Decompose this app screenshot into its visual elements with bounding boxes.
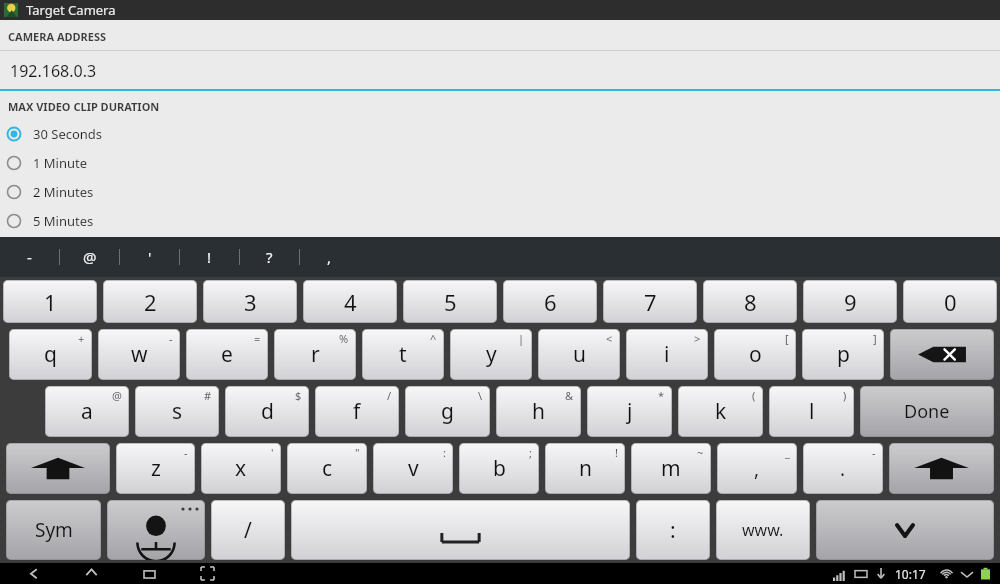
button[interactable]: Target Camera [0, 0, 1000, 20]
button[interactable]: 0 [903, 280, 997, 323]
button[interactable]: 7 [603, 280, 697, 323]
staticText: ) [843, 388, 847, 403]
staticText: a [81, 397, 93, 426]
button[interactable]: h [496, 386, 581, 437]
button[interactable]: d [225, 386, 309, 437]
button[interactable]: j [587, 386, 672, 437]
button[interactable]: k [678, 386, 763, 437]
staticText: < [606, 331, 613, 346]
staticText: ! [207, 247, 212, 267]
button[interactable]: z [116, 443, 195, 494]
staticText: 192.168.0.3 [10, 60, 97, 82]
button[interactable]: Recent apps [138, 563, 160, 584]
button[interactable]: Space [291, 500, 630, 560]
button[interactable]: p [802, 329, 884, 380]
button[interactable]: 1 Minute [0, 148, 1000, 177]
button[interactable]: Done [860, 386, 994, 437]
staticText: " [355, 445, 360, 460]
button[interactable]: i [626, 329, 708, 380]
staticText: 3 [244, 287, 257, 317]
button[interactable]: 30 Seconds [0, 119, 1000, 148]
button[interactable]: Sym [6, 500, 101, 560]
button[interactable]: 1 [3, 280, 97, 323]
button[interactable]: u [538, 329, 620, 380]
button[interactable]: Hide keyboard [816, 500, 994, 560]
button[interactable]: y [450, 329, 532, 380]
button[interactable]: m [631, 443, 711, 494]
button[interactable]: : [636, 500, 710, 560]
staticText: Target Camera [26, 1, 116, 19]
button[interactable]: . [803, 443, 883, 494]
button[interactable]: 8 [703, 280, 797, 323]
staticText: 6 [544, 287, 557, 317]
button[interactable]: 2 Minutes [0, 177, 1000, 206]
button[interactable]: Back [22, 563, 44, 584]
staticText: ' [148, 247, 152, 267]
button[interactable]: Shift [889, 443, 994, 494]
staticText: 7 [644, 287, 657, 317]
button[interactable]: Backspace [890, 329, 994, 380]
staticText: www. [742, 519, 784, 541]
button[interactable]: l [769, 386, 854, 437]
button[interactable]: @ [60, 237, 119, 277]
button[interactable]: 5 [403, 280, 497, 323]
button[interactable]: Voice input [107, 500, 205, 560]
button[interactable]: 9 [803, 280, 897, 323]
button[interactable]: ! [180, 237, 239, 277]
button[interactable]: n [545, 443, 625, 494]
staticText: s [172, 397, 183, 426]
staticText: ; [529, 445, 532, 460]
staticText: 9 [844, 287, 857, 317]
staticText: , [754, 456, 760, 482]
button[interactable]: , [717, 443, 797, 494]
staticText: Sym [35, 517, 73, 543]
staticText: ^ [430, 331, 437, 346]
button[interactable]: , [300, 237, 359, 277]
button[interactable]: Home [80, 563, 102, 584]
button[interactable]: Shift [6, 443, 110, 494]
button[interactable]: g [405, 386, 490, 437]
staticText: ! [615, 445, 618, 460]
button[interactable]: t [362, 329, 444, 380]
staticText: ] [873, 331, 877, 346]
staticText: & [565, 388, 574, 403]
staticText: 30 Seconds [33, 125, 103, 143]
button[interactable]: ' [120, 237, 179, 277]
staticText: 0 [944, 287, 957, 317]
staticText: j [627, 397, 633, 426]
staticText: / [244, 516, 252, 545]
button[interactable]: / [211, 500, 285, 560]
button[interactable]: c [287, 443, 367, 494]
button[interactable]: Screenshot [196, 563, 218, 584]
staticText: Done [904, 399, 950, 424]
button[interactable]: 5 Minutes [0, 206, 1000, 235]
button[interactable]: e [186, 329, 268, 380]
staticText: h [532, 397, 545, 426]
button[interactable]: q [9, 329, 92, 380]
button[interactable]: f [315, 386, 399, 437]
staticText: t [399, 340, 407, 369]
staticText: - [27, 247, 32, 267]
staticText: . [840, 456, 846, 482]
button[interactable]: a [45, 386, 129, 437]
button[interactable]: www. [716, 500, 810, 560]
button[interactable]: s [135, 386, 219, 437]
staticText: + [78, 331, 85, 346]
staticText: : [443, 445, 446, 460]
staticText: @ [112, 388, 122, 403]
button[interactable]: - [0, 237, 59, 277]
button[interactable]: 6 [503, 280, 597, 323]
button[interactable]: x [201, 443, 281, 494]
button[interactable]: o [714, 329, 796, 380]
button[interactable]: b [459, 443, 539, 494]
button[interactable]: ? [240, 237, 299, 277]
button[interactable]: v [373, 443, 453, 494]
staticText: ( [752, 388, 756, 403]
button[interactable]: 2 [103, 280, 197, 323]
staticText: - [169, 331, 173, 346]
button[interactable]: 4 [303, 280, 397, 323]
button[interactable]: w [98, 329, 180, 380]
button[interactable]: r [274, 329, 356, 380]
button[interactable]: 3 [203, 280, 297, 323]
staticText: w [131, 340, 148, 369]
